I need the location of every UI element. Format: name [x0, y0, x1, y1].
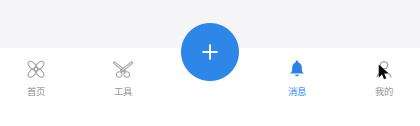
button[interactable]: 首页 — [4, 58, 68, 98]
button[interactable]: 工具 — [91, 58, 155, 98]
button[interactable]: 消息 — [265, 58, 329, 98]
button[interactable]: 新建 — [181, 23, 239, 81]
staticText: 我的 — [375, 84, 393, 98]
button[interactable]: 我的 — [352, 58, 416, 98]
staticText: 消息 — [288, 84, 306, 98]
staticText: 首页 — [27, 84, 45, 98]
staticText: 工具 — [114, 84, 132, 98]
